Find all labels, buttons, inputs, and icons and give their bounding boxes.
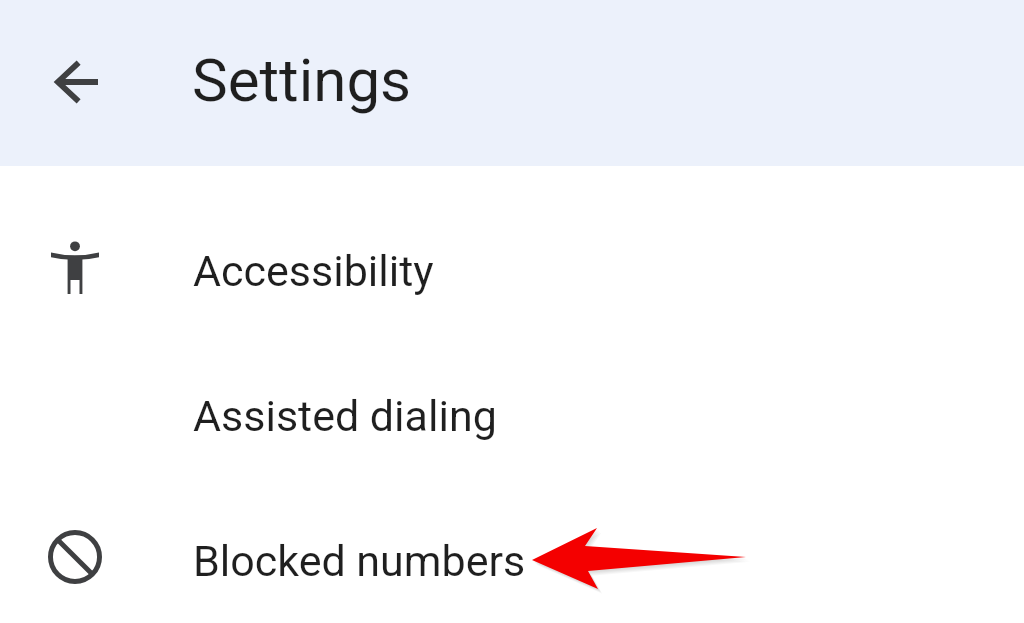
staticText: Blocked numbers [193, 536, 526, 586]
button[interactable]: Blocked numbers [0, 489, 1024, 623]
button[interactable]: Navigate up [32, 37, 121, 126]
button[interactable]: Assisted dialing [0, 344, 1024, 489]
staticText: Assisted dialing [193, 391, 497, 441]
button[interactable]: Accessibility [0, 199, 1024, 344]
staticText: Settings [192, 45, 412, 115]
staticText: Accessibility [193, 246, 434, 296]
